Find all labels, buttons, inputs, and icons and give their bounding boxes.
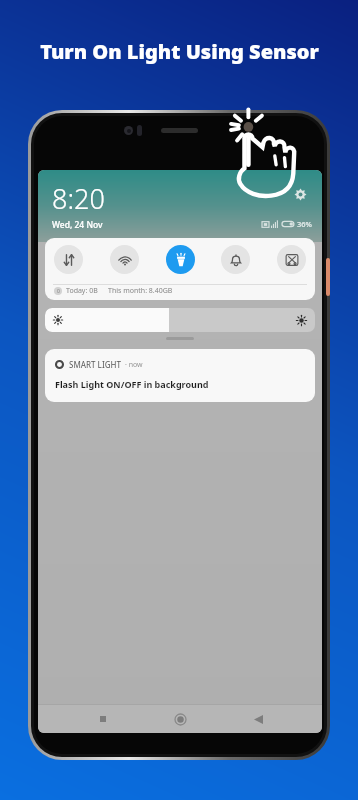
staticText: 0 xyxy=(57,288,60,295)
button[interactable]: Quick setting toggle xyxy=(110,245,139,274)
button[interactable]: Quick setting toggle xyxy=(166,245,195,274)
staticText: Today: 0B xyxy=(66,286,98,296)
staticText: Flash Light ON/OFF in background xyxy=(55,378,209,390)
staticText: 8:20 xyxy=(52,180,105,217)
staticText: Wed, 24 Nov xyxy=(52,219,103,231)
staticText: This month: 8.40GB xyxy=(108,286,173,296)
staticText: · now xyxy=(125,360,143,370)
staticText: SMART LIGHT xyxy=(69,359,122,370)
button[interactable]: Quick setting toggle xyxy=(221,245,250,274)
button[interactable]: Home xyxy=(167,706,193,732)
button[interactable]: Back xyxy=(245,706,271,732)
button[interactable]: Quick setting toggle xyxy=(277,245,306,274)
button[interactable]: Settings xyxy=(290,184,310,204)
button[interactable]: Brightness xyxy=(45,308,315,332)
button[interactable]: SMART LIGHT xyxy=(45,349,315,402)
button[interactable]: Quick setting toggle xyxy=(54,245,83,274)
staticText: Turn On Light Using Sensor xyxy=(40,38,319,65)
staticText: 36% xyxy=(297,219,312,229)
button[interactable]: Recents xyxy=(90,706,116,732)
